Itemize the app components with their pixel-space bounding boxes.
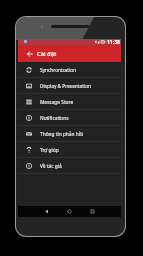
staticText: Notifications bbox=[40, 115, 69, 122]
staticText: Display & Presentation bbox=[40, 83, 92, 90]
button[interactable]: Navigate up bbox=[21, 45, 38, 62]
staticText: Cài đặt bbox=[37, 50, 57, 58]
button[interactable]: Về tác giả bbox=[18, 158, 121, 174]
button[interactable]: Synchronization bbox=[18, 62, 121, 78]
button[interactable]: Message Store bbox=[18, 94, 121, 110]
button[interactable]: Home bbox=[64, 206, 75, 217]
button[interactable]: Back bbox=[41, 206, 52, 217]
staticText: Message Store bbox=[40, 99, 74, 106]
staticText: Synchronization bbox=[40, 67, 77, 74]
staticText: Về tác giả bbox=[40, 163, 62, 170]
button[interactable]: Display & Presentation bbox=[18, 78, 121, 94]
button[interactable]: Trợ giúp bbox=[18, 142, 121, 158]
button[interactable]: Recent apps bbox=[87, 206, 98, 217]
button[interactable]: Notifications bbox=[18, 110, 121, 126]
button[interactable]: Thông tin phản hồi bbox=[18, 126, 121, 142]
staticText: Thông tin phản hồi bbox=[40, 131, 83, 138]
staticText: 11:38 bbox=[107, 39, 120, 45]
staticText: Trợ giúp bbox=[40, 147, 59, 154]
